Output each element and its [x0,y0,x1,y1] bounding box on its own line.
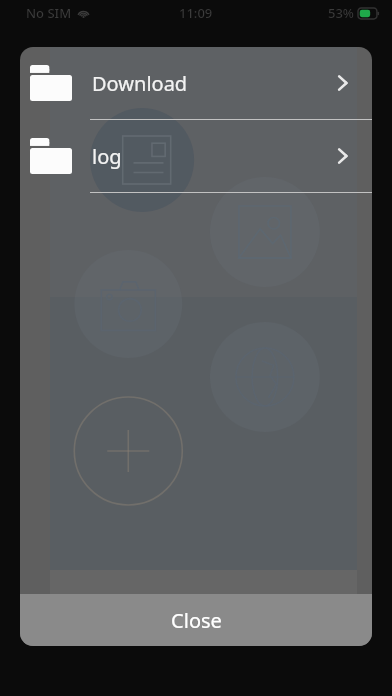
staticText: 11:09 [179,4,213,22]
staticText: Download [92,70,188,97]
staticText: log [92,143,122,170]
other: Open Download [334,72,356,94]
staticText: Close [171,607,222,634]
button[interactable]: Download [20,47,372,119]
other: Open log [334,145,356,167]
button[interactable]: log [20,120,372,192]
button[interactable]: Close [20,594,372,646]
staticText: No SIM [26,4,72,22]
staticText: 53% [328,4,354,22]
